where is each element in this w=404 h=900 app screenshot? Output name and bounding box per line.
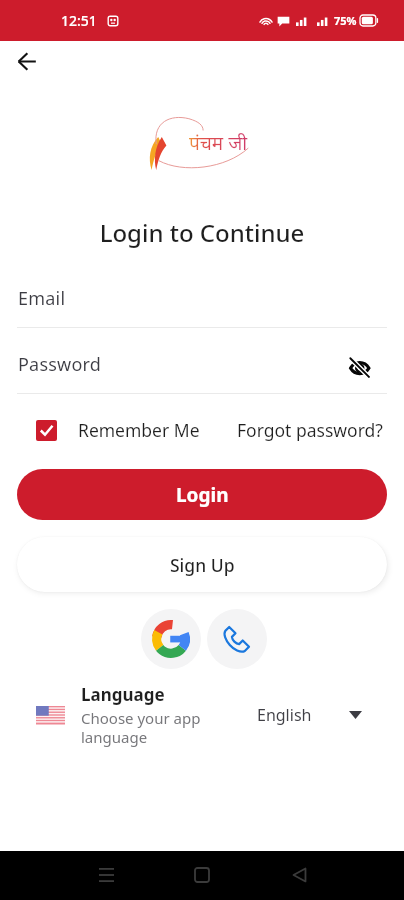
button[interactable]: Show password [344, 352, 374, 382]
staticText: Email [18, 286, 66, 311]
button[interactable]: Sign in with phone [207, 609, 267, 669]
staticText: Choose your app language [81, 708, 201, 747]
staticText: Login [176, 482, 229, 508]
staticText: Language [81, 683, 165, 706]
staticText: Forgot password? [237, 418, 383, 442]
staticText: Password [18, 352, 102, 377]
staticText: English [257, 704, 312, 726]
staticText: Remember Me [78, 418, 200, 442]
staticText: Login to Continue [0, 216, 404, 249]
button[interactable]: Back [275, 851, 323, 899]
button[interactable]: Login [17, 469, 387, 520]
staticText: 12:51 [61, 11, 97, 30]
button[interactable]: Back [9, 43, 45, 79]
button[interactable]: Sign Up [17, 537, 387, 592]
staticText: पंचम जी [189, 130, 248, 156]
staticText: Sign Up [170, 553, 235, 577]
staticText: 75% [334, 13, 357, 28]
button[interactable]: Home [178, 851, 226, 899]
button[interactable]: Forgot password? [230, 414, 390, 446]
button[interactable]: Sign in with Google [141, 609, 201, 669]
button[interactable]: Recent apps [82, 851, 130, 899]
button[interactable]: Remember Me [28, 414, 200, 446]
button[interactable]: Language [0, 683, 404, 747]
